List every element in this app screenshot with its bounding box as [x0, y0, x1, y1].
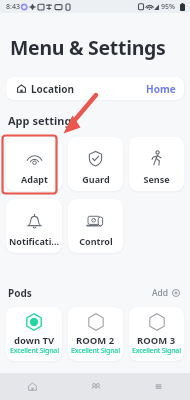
staticText: Excellent Signal: [132, 346, 181, 356]
staticText: Notificati...: [9, 235, 59, 247]
button[interactable]: ROOM 3: [129, 307, 184, 361]
staticText: ROOM 2: [76, 334, 115, 347]
button[interactable]: down TV: [6, 307, 62, 361]
button[interactable]: Adapt: [6, 137, 62, 191]
staticText: 95%: [161, 2, 175, 12]
staticText: Excellent Signal: [10, 346, 59, 356]
button[interactable]: Menu: [127, 373, 190, 400]
button[interactable]: Sense: [129, 137, 184, 191]
button[interactable]: People: [64, 373, 127, 400]
staticText: Pods: [8, 286, 32, 300]
button[interactable]: Location: [6, 77, 184, 100]
button[interactable]: ROOM 2: [68, 307, 123, 361]
button[interactable]: Home: [0, 373, 64, 400]
staticText: Location: [31, 82, 75, 96]
staticText: Adapt: [21, 173, 48, 185]
staticText: ROOM 3: [137, 334, 176, 347]
staticText: Add: [152, 287, 169, 299]
staticText: Excellent Signal: [71, 346, 120, 356]
button[interactable]: Notificati...: [6, 199, 62, 253]
staticText: Guard: [82, 173, 110, 185]
staticText: Home: [146, 82, 176, 96]
button[interactable]: Control: [68, 199, 123, 253]
button[interactable]: Add: [150, 285, 182, 301]
staticText: Control: [79, 235, 113, 247]
staticText: down TV: [14, 334, 55, 347]
staticText: Sense: [143, 173, 170, 185]
staticText: 8:43: [6, 2, 20, 12]
staticText: Menu & Settings: [10, 34, 166, 61]
button[interactable]: Guard: [68, 137, 123, 191]
staticText: App settings: [8, 113, 77, 128]
